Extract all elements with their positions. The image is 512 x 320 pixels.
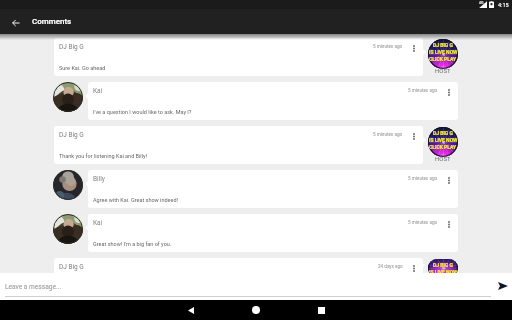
staticText: Great show! I'm a big fan of you.	[93, 241, 172, 247]
button[interactable]: More options	[444, 87, 454, 97]
staticText: IS LIVE NOW	[429, 49, 458, 55]
staticText: Comments	[32, 17, 72, 26]
button[interactable]: Home	[244, 300, 268, 320]
staticText: Kai	[93, 87, 103, 95]
staticText: I've a question I would like to ask. May…	[93, 109, 192, 115]
staticText: Sure Kai. Go ahead	[59, 65, 106, 71]
button[interactable]: More options	[409, 131, 419, 141]
staticText: 5 minutes ago	[408, 176, 438, 181]
staticText: HOST	[435, 67, 451, 74]
staticText: DJ BIG G	[433, 42, 453, 48]
staticText: DJ Big G	[59, 43, 84, 51]
button[interactable]: More options	[444, 175, 454, 185]
button[interactable]: More options	[444, 219, 454, 229]
button[interactable]: Back	[179, 300, 203, 320]
staticText: 4:15	[498, 2, 509, 8]
staticText: Kai	[93, 219, 103, 227]
button[interactable]: DJ Big G	[0, 38, 512, 76]
staticText: 24 days ago	[378, 264, 403, 269]
button[interactable]: More options	[409, 43, 419, 53]
button[interactable]: DJ Big G	[0, 258, 512, 277]
staticText: DJ Big G	[59, 131, 84, 139]
staticText: Thank you for listening Kai and Billy!	[59, 153, 148, 159]
staticText: CLICK PLAY	[429, 56, 457, 62]
staticText: CLICK PLAY	[429, 144, 457, 150]
button[interactable]: Back	[1, 9, 30, 34]
staticText: IS LIVE NOW	[429, 269, 458, 275]
button[interactable]: Recent apps	[309, 300, 333, 320]
button[interactable]: DJ Big G	[0, 126, 512, 164]
button[interactable]: Leave a message...	[5, 273, 485, 300]
staticText: DJ BIG G	[433, 130, 453, 136]
staticText: Agree with Kai. Great show indeed!	[93, 197, 178, 203]
staticText: DJ BIG G	[433, 262, 453, 268]
staticText: Leave a message...	[5, 283, 62, 291]
button[interactable]: Kai	[0, 82, 512, 120]
staticText: Billy	[93, 175, 105, 183]
button[interactable]: Kai	[0, 214, 512, 252]
staticText: 4G	[479, 1, 484, 5]
staticText: 5 minutes ago	[408, 220, 438, 225]
staticText: HOST	[435, 155, 451, 162]
button[interactable]: Send	[489, 272, 512, 299]
staticText: 5 minutes ago	[373, 132, 403, 137]
staticText: 5 minutes ago	[373, 44, 403, 49]
staticText: 5 minutes ago	[408, 88, 438, 93]
button[interactable]: Billy	[0, 170, 512, 208]
staticText: DJ Big G	[59, 263, 84, 271]
button[interactable]: More options	[409, 263, 419, 273]
staticText: IS LIVE NOW	[429, 137, 458, 143]
